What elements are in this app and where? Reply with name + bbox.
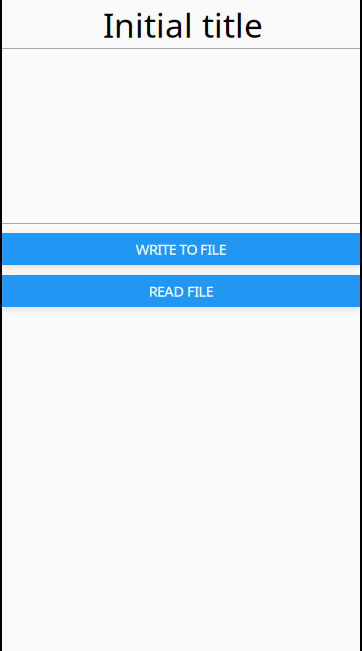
button[interactable]: READ FILE (2, 275, 360, 307)
staticText: READ FILE (148, 281, 213, 301)
button[interactable]: WRITE TO FILE (2, 233, 360, 265)
staticText: Initial title (103, 3, 263, 47)
staticText: WRITE TO FILE (135, 239, 226, 259)
